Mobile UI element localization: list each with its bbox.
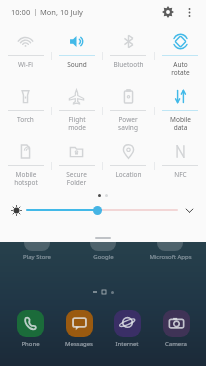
- staticText: Google: [93, 253, 114, 261]
- staticText: Power saving: [118, 115, 138, 132]
- button[interactable]: Flight mode: [51, 81, 102, 136]
- staticText: Sound: [67, 60, 87, 69]
- button[interactable]: Mobile data: [154, 81, 206, 136]
- staticText: Torch: [17, 115, 34, 124]
- staticText: Messages: [65, 340, 93, 348]
- staticText: Phone: [21, 340, 40, 348]
- staticText: 10:00: [11, 7, 31, 17]
- button[interactable]: Wi-Fi: [0, 26, 51, 81]
- button[interactable]: Internet: [104, 310, 150, 348]
- button[interactable]: Settings: [157, 1, 179, 23]
- button[interactable]: Secure Folder: [51, 136, 102, 191]
- button[interactable]: Torch: [0, 81, 51, 136]
- button[interactable]: Mobile hotspot: [0, 136, 51, 191]
- button[interactable]: More options: [179, 2, 199, 22]
- staticText: Location: [115, 170, 142, 179]
- button[interactable]: Expand: [178, 199, 200, 221]
- staticText: Play Store: [23, 253, 51, 261]
- button[interactable]: Sound: [51, 26, 102, 81]
- button[interactable]: Microsoft Apps: [140, 240, 200, 261]
- button[interactable]: Play Store: [7, 240, 67, 261]
- staticText: Microsoft Apps: [149, 253, 192, 261]
- button[interactable]: Auto rotate: [154, 26, 206, 81]
- staticText: Internet: [115, 340, 139, 348]
- button[interactable]: Location: [102, 136, 154, 191]
- staticText: Camera: [165, 340, 187, 348]
- staticText: Flight mode: [68, 115, 86, 132]
- staticText: NFC: [174, 170, 187, 179]
- staticText: Mon, 10 July: [40, 7, 83, 17]
- staticText: Bluetooth: [113, 60, 144, 69]
- button[interactable]: Google: [73, 240, 133, 261]
- button[interactable]: Power saving: [102, 81, 154, 136]
- staticText: Mobile data: [170, 115, 191, 132]
- button[interactable]: Phone: [7, 310, 53, 348]
- button[interactable]: NFC: [154, 136, 206, 191]
- button[interactable]: Bluetooth: [102, 26, 154, 81]
- staticText: Mobile hotspot: [14, 170, 38, 187]
- staticText: Auto rotate: [171, 60, 190, 77]
- button[interactable]: Brightness: [6, 200, 26, 220]
- button[interactable]: Brightness slider: [26, 199, 178, 221]
- button[interactable]: Messages: [56, 310, 102, 348]
- staticText: Secure Folder: [66, 170, 87, 187]
- staticText: Wi-Fi: [18, 60, 33, 69]
- button[interactable]: Camera: [153, 310, 199, 348]
